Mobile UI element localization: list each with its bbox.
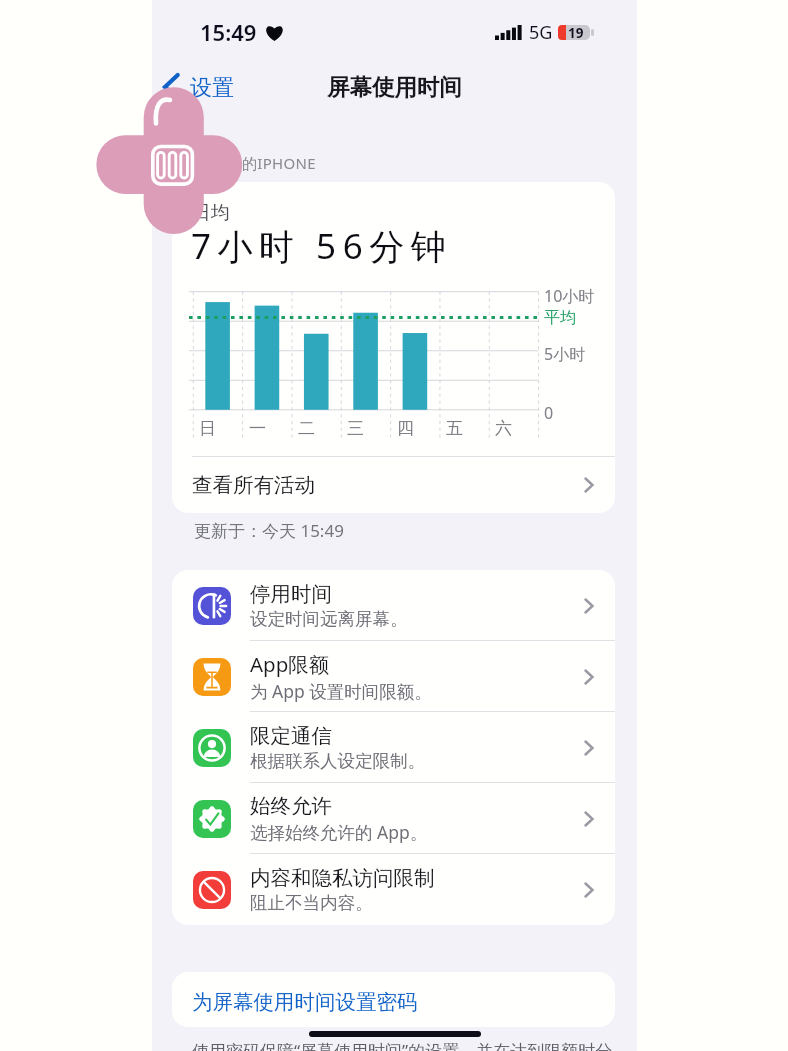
staticText: 二 xyxy=(298,418,315,439)
button[interactable]: 停用时间 xyxy=(172,570,615,641)
staticText: 平均 xyxy=(544,308,576,328)
staticText: 停用时间 xyxy=(250,581,332,607)
staticText: 设定时间远离屏幕。 xyxy=(250,608,408,630)
staticText: 0 xyxy=(544,402,554,424)
staticText: 一 xyxy=(249,418,266,439)
staticText: App限额 xyxy=(250,650,330,678)
staticText: 六 xyxy=(495,418,512,439)
staticText: 日均 xyxy=(192,201,230,225)
staticText: 内容和隐私访问限制 xyxy=(250,865,435,891)
button[interactable]: 内容和隐私访问限制 xyxy=(172,854,615,925)
staticText: 5G xyxy=(529,20,553,45)
staticText: 五 xyxy=(446,418,463,439)
staticText: 的IPHONE xyxy=(242,153,316,173)
staticText: 为屏幕使用时间设置密码 xyxy=(192,989,418,1015)
staticText: 7小时 56分钟 xyxy=(191,222,453,270)
staticText: 查看所有活动 xyxy=(192,472,315,498)
staticText: 5小时 xyxy=(544,343,586,365)
staticText: 限定通信 xyxy=(250,723,332,749)
staticText: 日 xyxy=(199,418,216,439)
staticText: 15:49 xyxy=(200,17,257,47)
staticText: 10小时 xyxy=(544,285,595,307)
staticText: 三 xyxy=(347,418,364,439)
staticText: 设置 xyxy=(190,74,234,102)
button[interactable]: 查看所有活动 xyxy=(172,457,615,513)
staticText: 阻止不当内容。 xyxy=(250,892,373,914)
button[interactable]: 为屏幕使用时间设置密码 xyxy=(172,972,615,1027)
button[interactable]: App限额 xyxy=(172,641,615,712)
staticText: 屏幕使用时间 xyxy=(327,73,462,101)
button[interactable]: 限定通信 xyxy=(172,712,615,783)
staticText: 四 xyxy=(397,418,414,439)
button[interactable]: 始终允许 xyxy=(172,783,615,854)
staticText: 19 xyxy=(568,24,584,39)
staticText: 选择始终允许的 App。 xyxy=(250,820,428,844)
staticText: 使用密码保障“屏幕使用时间”的设置，并在达到限额时分 xyxy=(192,1039,613,1051)
staticText: 根据联系人设定限制。 xyxy=(250,750,425,772)
staticText: 为 App 设置时间限额。 xyxy=(250,679,432,703)
button[interactable]: 设置 xyxy=(158,68,236,106)
staticText: 更新于：今天 15:49 xyxy=(194,519,344,542)
staticText: 始终允许 xyxy=(250,793,332,819)
